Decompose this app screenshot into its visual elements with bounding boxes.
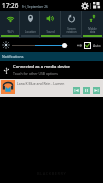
staticText: Lana K Blue and Rein - Lumen <box>17 81 65 86</box>
button[interactable]: Brightness <box>62 43 67 48</box>
staticText: Location <box>25 30 36 34</box>
button[interactable]: Quick settings <box>92 1 101 10</box>
button[interactable]: Next <box>93 87 100 94</box>
button[interactable]: Previous <box>73 87 80 94</box>
staticText: Notifications <box>2 54 24 59</box>
button[interactable]: Auto brightness <box>84 42 91 49</box>
staticText: Screen rotation <box>66 27 77 34</box>
button[interactable]: Location <box>20 11 40 38</box>
staticText: BLACKBERRY <box>37 171 67 176</box>
button[interactable]: Sound <box>40 11 61 38</box>
staticText: 17:26 <box>2 1 19 10</box>
button[interactable]: Mobile data <box>82 11 103 38</box>
button[interactable]: Connected as a media device <box>0 61 103 79</box>
staticText: Mobile data <box>88 27 97 34</box>
staticText: Sound <box>46 30 55 34</box>
button[interactable]: Settings <box>80 1 89 10</box>
staticText: Fri, September 26 <box>22 5 48 9</box>
staticText: Connected as a media device <box>13 64 70 70</box>
button[interactable]: Pause <box>83 87 90 94</box>
button[interactable]: Lana K Blue and Rein - Lumen <box>0 79 103 97</box>
button[interactable]: Wi-Fi <box>0 11 20 38</box>
staticText: Touch for other USB options <box>13 71 58 76</box>
button[interactable]: Screen rotation <box>61 11 82 38</box>
staticText: Wi-Fi <box>7 30 14 34</box>
staticText: Auto <box>93 43 101 48</box>
